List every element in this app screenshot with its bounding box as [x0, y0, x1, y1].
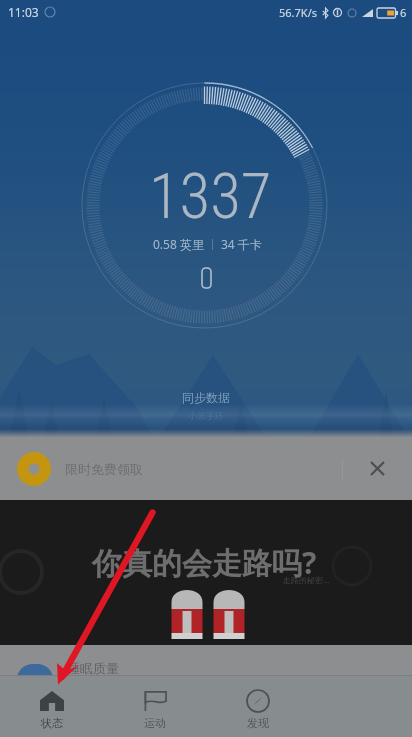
staticText: 你真的会走路吗? — [92, 542, 317, 583]
staticText: 发现 — [247, 716, 269, 730]
staticText: 睡眠质量 — [67, 660, 119, 676]
staticText: 状态 — [41, 716, 63, 730]
button[interactable]: 限时免费领取 — [0, 437, 412, 500]
staticText: 56.7K/s — [279, 5, 317, 20]
button[interactable]: 状态 — [0, 676, 103, 737]
staticText: 限时免费领取 — [65, 461, 143, 477]
button[interactable]: 你真的会走路吗? — [0, 500, 412, 645]
staticText: 6 — [400, 5, 407, 20]
staticText: 1337 — [149, 160, 272, 234]
staticText: 11:03 — [8, 4, 39, 20]
staticText: 34 千卡 — [221, 236, 262, 252]
staticText: 0.58 英里 — [153, 236, 204, 252]
staticText: 小米手环 — [188, 410, 224, 421]
staticText: 运动 — [144, 716, 166, 730]
staticText: 走路的秘密… — [283, 574, 330, 585]
staticText: 同步数据 — [182, 390, 230, 405]
button[interactable]: 运动 — [103, 676, 206, 737]
button[interactable]: 发现 — [206, 676, 309, 737]
button[interactable]: Close — [343, 437, 412, 500]
